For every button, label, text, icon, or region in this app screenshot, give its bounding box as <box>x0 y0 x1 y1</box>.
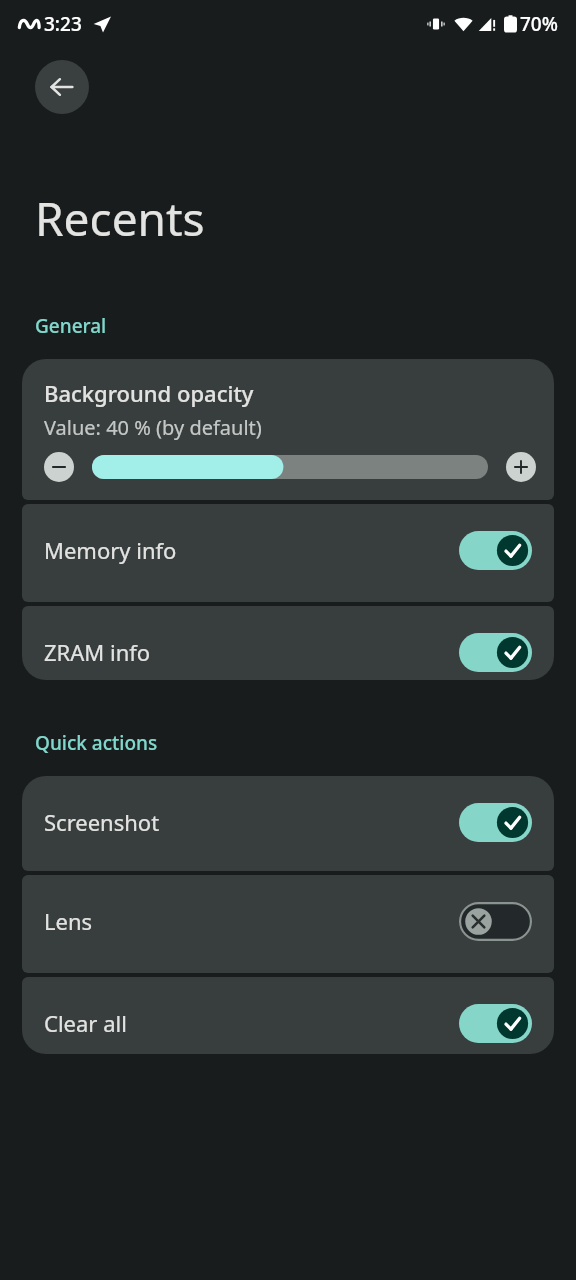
staticText: Screenshot <box>44 807 160 837</box>
staticText: Quick actions <box>35 730 158 756</box>
button[interactable]: Back <box>35 60 89 114</box>
staticText: Background opacity <box>44 378 254 408</box>
button[interactable]: Off <box>459 902 532 941</box>
button[interactable]: Lens <box>22 875 554 973</box>
staticText: Recents <box>35 187 205 250</box>
staticText: Value: 40 % (by default) <box>44 414 262 441</box>
staticText: Clear all <box>44 1008 127 1038</box>
staticText: 70% <box>520 11 558 37</box>
button[interactable]: Decrease <box>44 452 74 482</box>
staticText: ZRAM info <box>44 637 151 667</box>
button[interactable]: On <box>459 803 532 842</box>
staticText: 3:23 <box>44 11 82 37</box>
button[interactable]: Background opacity <box>22 359 554 500</box>
button[interactable]: Memory info <box>22 504 554 602</box>
staticText: Lens <box>44 906 93 936</box>
button[interactable]: On <box>459 633 532 672</box>
staticText: General <box>35 313 107 339</box>
button[interactable]: On <box>459 531 532 570</box>
button[interactable]: ZRAM info <box>22 606 554 680</box>
button[interactable]: On <box>459 1004 532 1043</box>
button[interactable]: Increase <box>506 452 536 482</box>
staticText: Memory info <box>44 535 177 565</box>
button[interactable]: Screenshot <box>22 776 554 871</box>
button[interactable]: Clear all <box>22 977 554 1054</box>
